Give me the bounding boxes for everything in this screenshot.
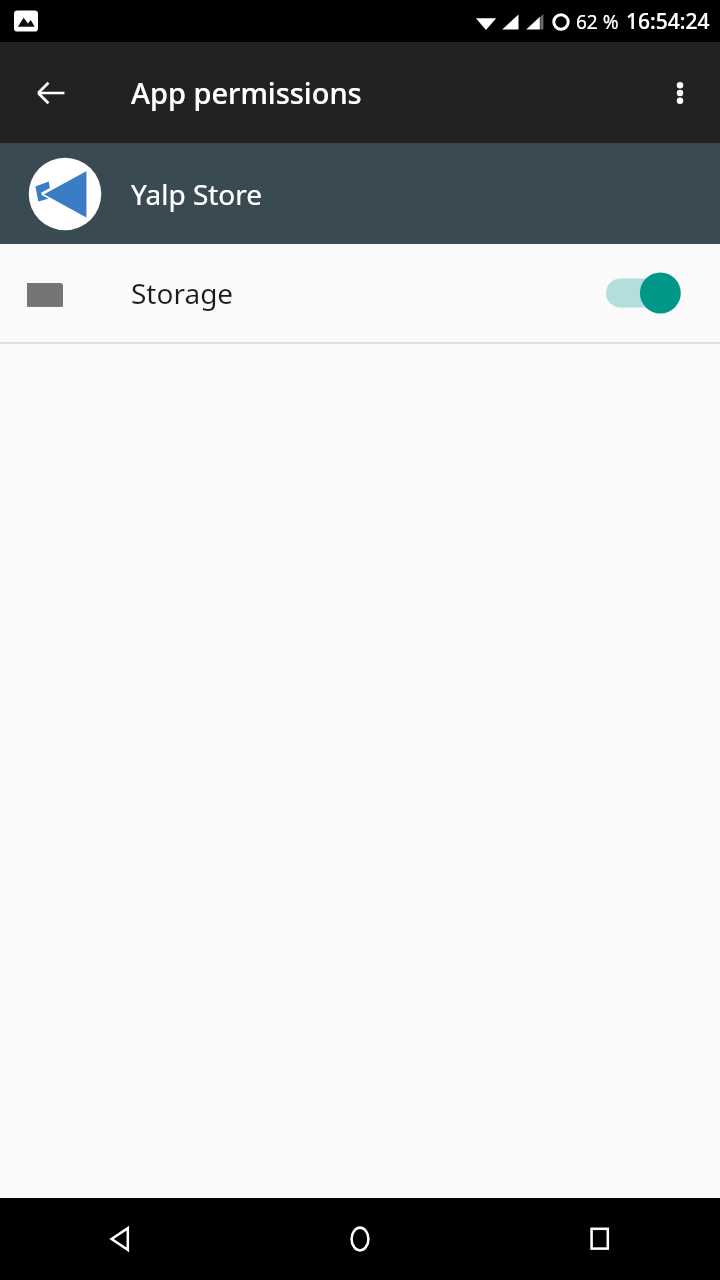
button[interactable]: Storage permission toggle xyxy=(606,262,690,324)
staticText: 62 % xyxy=(576,9,619,35)
button[interactable]: Back xyxy=(19,61,83,125)
button[interactable]: More options xyxy=(648,61,712,125)
button[interactable]: Storage xyxy=(0,244,720,342)
staticText: Yalp Store xyxy=(131,175,263,213)
button[interactable]: Back xyxy=(0,1198,240,1280)
staticText: 16:54:24 xyxy=(626,7,710,36)
button[interactable]: Yalp Store xyxy=(0,143,720,244)
staticText: Storage xyxy=(131,274,234,312)
button[interactable]: Recents xyxy=(480,1198,720,1280)
staticText: App permissions xyxy=(131,73,362,112)
button[interactable]: Home xyxy=(240,1198,480,1280)
